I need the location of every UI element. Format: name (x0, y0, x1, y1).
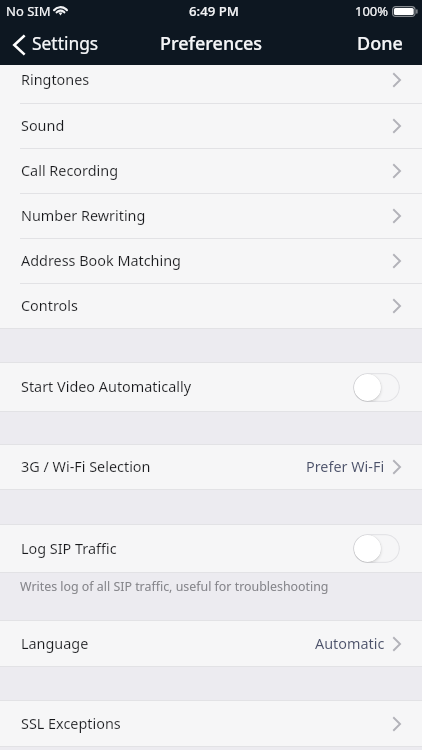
button[interactable]: Language (0, 621, 422, 666)
staticText: Preferences (160, 31, 263, 56)
button[interactable]: Start Video Automatically (0, 363, 422, 411)
staticText: Prefer Wi-Fi (306, 457, 385, 477)
button[interactable]: Controls (0, 284, 422, 328)
staticText: Settings (32, 31, 99, 55)
staticText: Ringtones (21, 70, 90, 90)
staticText: No SIM (6, 2, 51, 20)
staticText: SSL Exceptions (21, 714, 121, 734)
button[interactable]: Address Book Matching (0, 239, 422, 283)
staticText: Start Video Automatically (21, 377, 191, 397)
button[interactable]: Sound (0, 104, 422, 148)
staticText: 3G / Wi-Fi Selection (21, 457, 151, 477)
staticText: Done (357, 31, 403, 56)
staticText: 6:49 PM (189, 2, 239, 20)
staticText: Address Book Matching (21, 251, 181, 271)
button[interactable]: Log SIP Traffic (0, 525, 422, 572)
staticText: Sound (21, 116, 65, 136)
staticText: Controls (21, 296, 78, 316)
staticText: Log SIP Traffic (21, 539, 117, 559)
staticText: Automatic (315, 634, 385, 654)
staticText: Call Recording (21, 161, 118, 181)
staticText: 100% (355, 2, 389, 20)
button[interactable]: Call Recording (0, 149, 422, 193)
button[interactable]: SSL Exceptions (0, 701, 422, 746)
button[interactable]: Number Rewriting (0, 194, 422, 238)
button[interactable]: Toggle off (353, 534, 400, 563)
button[interactable]: Toggle off (353, 373, 400, 402)
staticText: Language (21, 634, 89, 654)
button[interactable]: Done (341, 27, 422, 64)
button[interactable]: 3G / Wi-Fi Selection (0, 445, 422, 489)
staticText: Number Rewriting (21, 206, 146, 226)
button[interactable]: Back to Settings (0, 27, 109, 63)
button[interactable]: Ringtones (0, 65, 422, 103)
staticText: Writes log of all SIP traffic, useful fo… (20, 578, 329, 595)
